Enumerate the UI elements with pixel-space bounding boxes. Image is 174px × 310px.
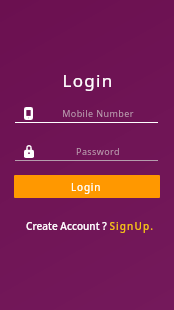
other: Mobile Number xyxy=(24,107,33,120)
other: Password xyxy=(24,145,34,158)
staticText: Login xyxy=(71,180,102,194)
staticText: Create Account ? SignUp. xyxy=(26,219,155,233)
staticText: Password xyxy=(40,145,156,157)
staticText: Mobile Number xyxy=(40,107,156,119)
button[interactable]: Mobile Number xyxy=(15,102,158,124)
staticText: Login xyxy=(1,69,174,92)
button[interactable]: Password xyxy=(15,140,158,162)
button[interactable]: Create Account ? SignUp. xyxy=(0,216,174,234)
button[interactable]: Login xyxy=(14,175,160,198)
